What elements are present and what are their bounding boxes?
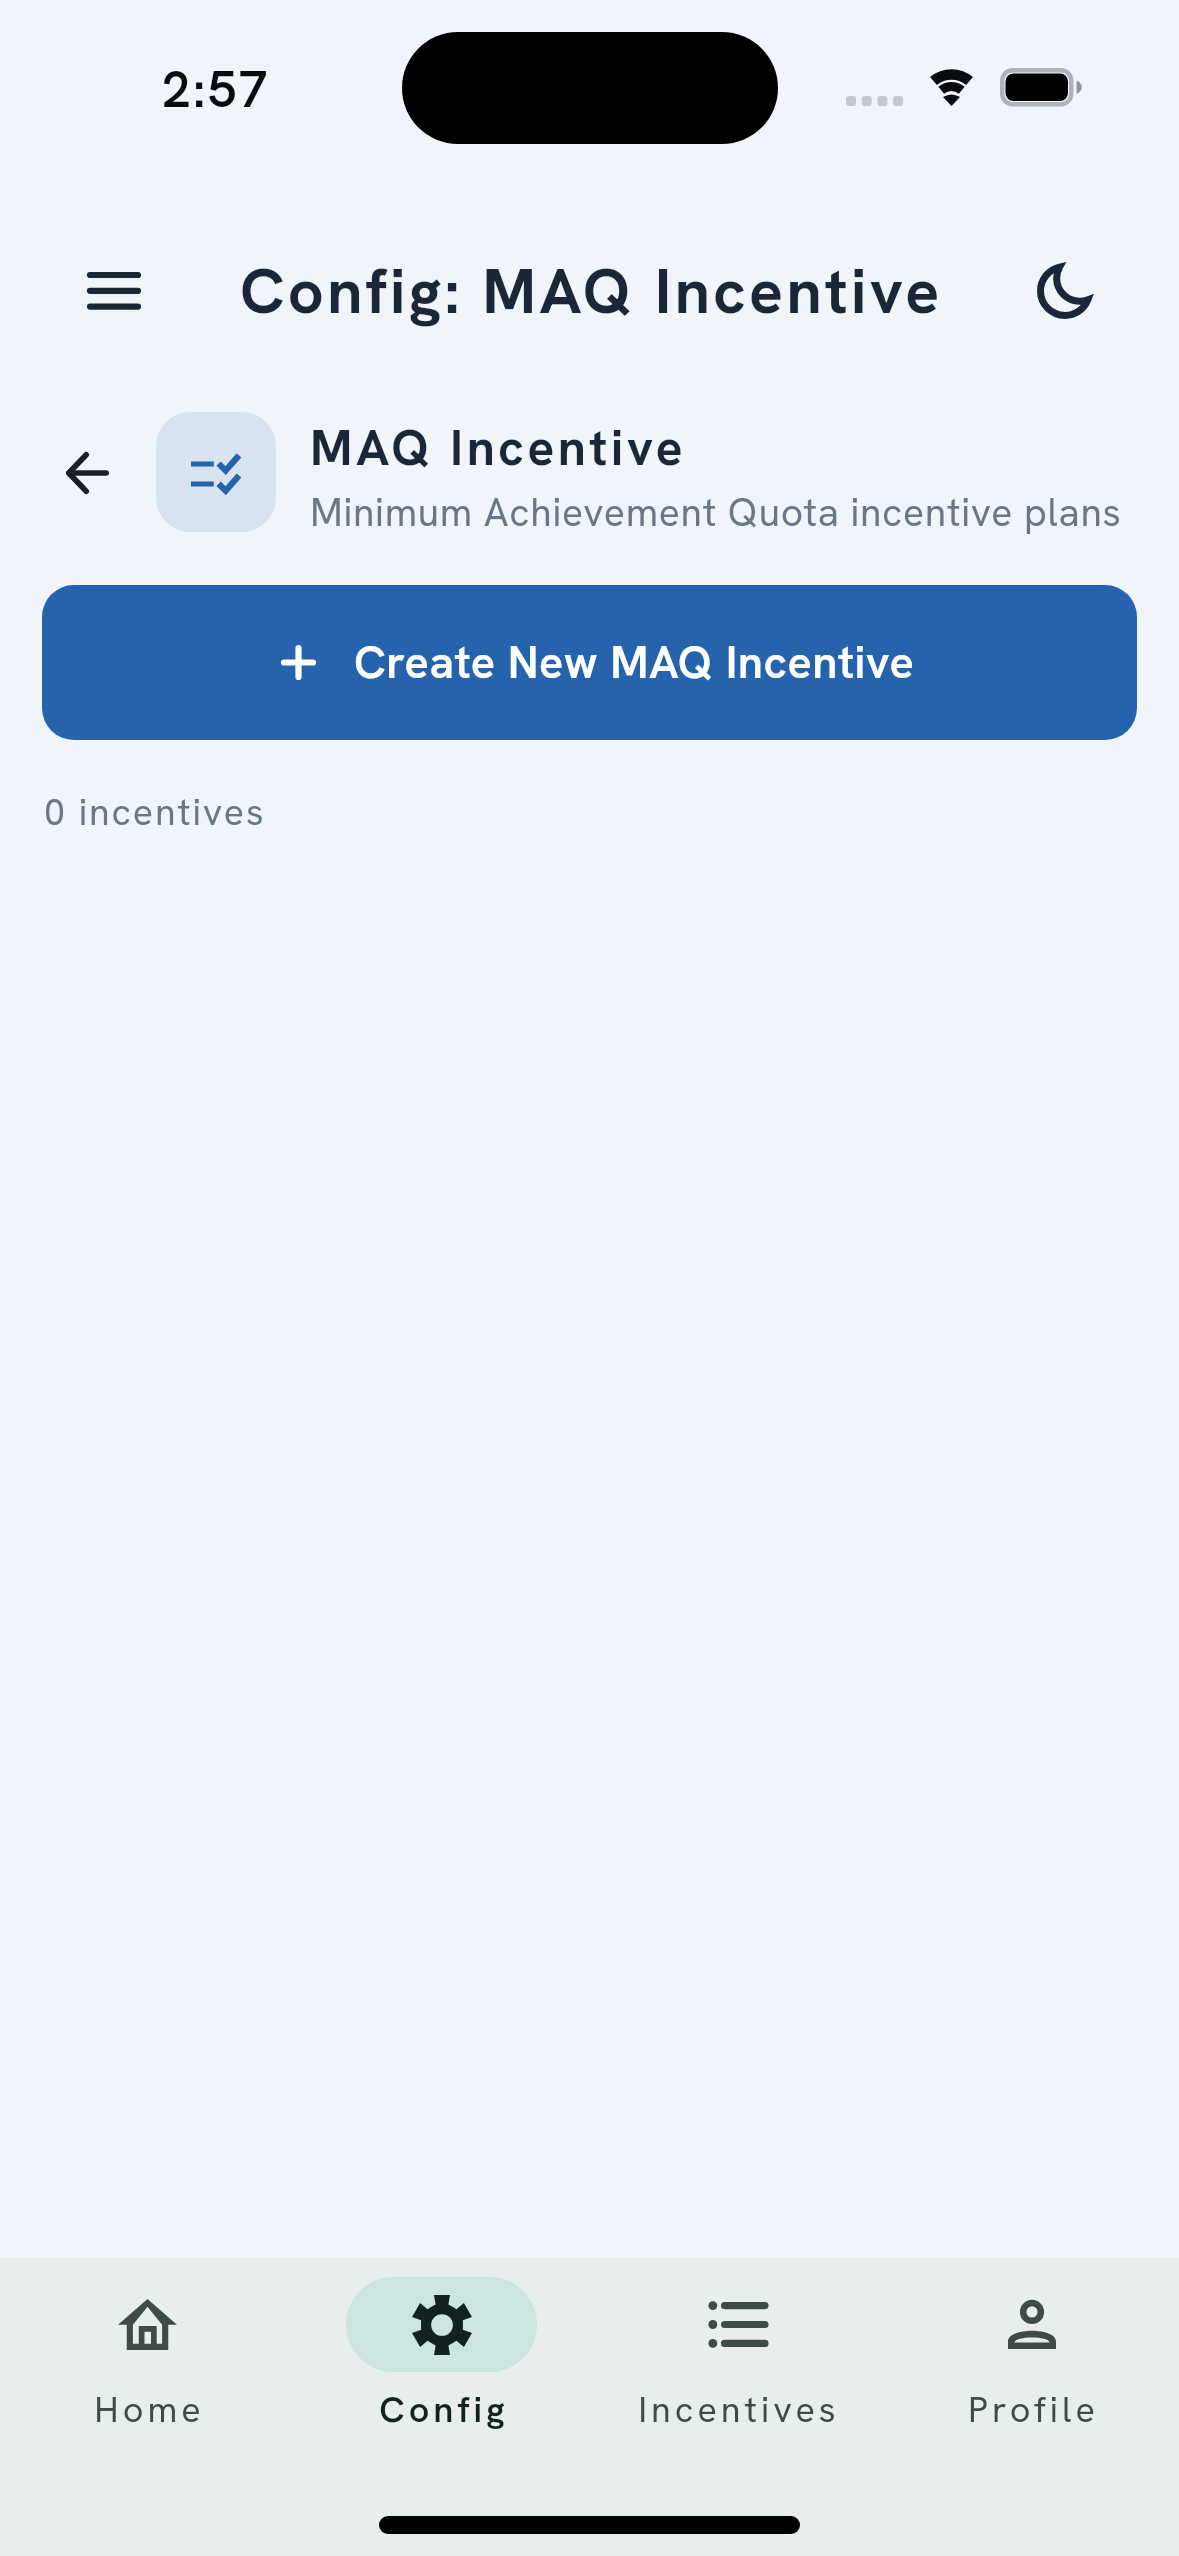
staticText: Create New MAQ Incentive [354,633,915,692]
button[interactable]: Profile [884,2258,1179,2463]
staticText: MAQ Incentive [310,415,687,480]
button[interactable]: Menu [60,237,168,345]
button[interactable]: Back [42,428,132,518]
button[interactable]: Toggle dark mode [1011,237,1119,345]
staticText: 2:57 [162,56,270,123]
button[interactable]: Create New MAQ Incentive [42,585,1137,740]
staticText: Minimum Achievement Quota incentive plan… [310,487,1122,537]
staticText: Config: MAQ Incentive [240,250,943,332]
button[interactable]: Incentives [589,2258,884,2463]
staticText: Incentives [638,2386,840,2433]
button[interactable]: Config [294,2258,589,2463]
staticText: Config [379,2386,509,2433]
staticText: 0 incentives [44,787,266,836]
button[interactable]: Home [0,2258,294,2463]
staticText: Profile [968,2386,1099,2433]
staticText: Home [94,2386,205,2433]
